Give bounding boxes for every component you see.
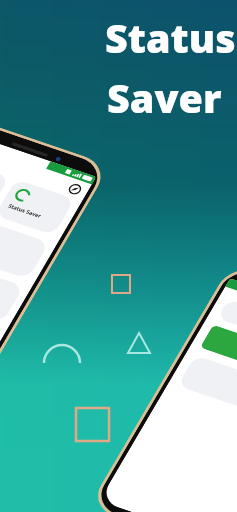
staticText: Saver [107,71,222,125]
button[interactable] [200,325,237,388]
button[interactable]: About [66,182,84,196]
button[interactable]: Status Saver [0,179,75,236]
staticText: Status [105,11,236,65]
staticText: Status Saver [7,203,43,220]
